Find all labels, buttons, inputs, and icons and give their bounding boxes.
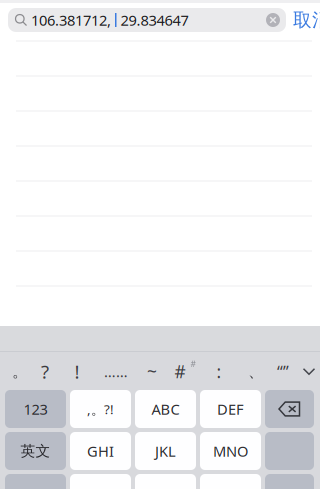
button[interactable]: 123: [5, 390, 66, 428]
button[interactable]: ABC: [135, 390, 196, 428]
button[interactable]: ?: [32, 352, 58, 391]
staticText: ?: [41, 359, 49, 384]
button[interactable]: ……: [101, 352, 131, 391]
button[interactable]: [70, 474, 131, 489]
button[interactable]: ~: [139, 352, 165, 391]
button[interactable]: JKL: [135, 432, 196, 470]
button[interactable]: Delete: [265, 390, 314, 428]
button[interactable]: “”: [270, 352, 296, 391]
button[interactable]: 。: [7, 352, 33, 391]
staticText: “”: [277, 361, 289, 382]
button[interactable]: #: [167, 352, 193, 391]
staticText: 106.381712,: [31, 10, 111, 30]
staticText: ~: [147, 360, 157, 383]
staticText: 29.834647: [120, 10, 188, 30]
staticText: #: [174, 360, 185, 383]
staticText: DEF: [217, 399, 244, 419]
staticText: !: [74, 359, 79, 384]
staticText: :: [216, 360, 221, 383]
button[interactable]: DEF: [200, 390, 261, 428]
staticText: ＃: [188, 358, 197, 370]
staticText: 、: [248, 362, 264, 381]
button[interactable]: MNO: [200, 432, 261, 470]
button[interactable]: [200, 474, 261, 489]
button[interactable]: [5, 474, 66, 489]
button[interactable]: [265, 474, 314, 489]
staticText: 取消: [293, 8, 320, 31]
button[interactable]: 取消: [293, 8, 320, 32]
button[interactable]: 、: [243, 352, 269, 391]
button[interactable]: GHI: [70, 432, 131, 470]
button[interactable]: [135, 474, 196, 489]
button[interactable]: :: [206, 352, 232, 391]
staticText: ……: [104, 362, 128, 381]
staticText: ,。?!: [87, 400, 114, 418]
staticText: ABC: [151, 399, 179, 419]
staticText: JKL: [155, 441, 176, 461]
staticText: GHI: [87, 441, 114, 461]
button[interactable]: Clear text: [266, 13, 280, 27]
button[interactable]: ,。?!: [70, 390, 131, 428]
staticText: 英文: [20, 442, 50, 460]
staticText: MNO: [213, 441, 248, 461]
staticText: 。: [12, 362, 28, 381]
button[interactable]: !: [64, 352, 90, 391]
button[interactable]: Hide keyboard: [296, 352, 320, 391]
button[interactable]: [265, 432, 314, 470]
staticText: 123: [23, 399, 47, 419]
button[interactable]: 英文: [5, 432, 66, 470]
